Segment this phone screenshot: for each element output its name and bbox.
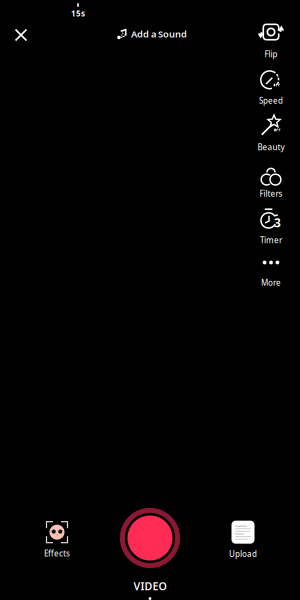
button[interactable]: Beauty xyxy=(248,114,294,152)
button[interactable]: Add a Sound xyxy=(109,22,195,46)
button[interactable]: Record xyxy=(119,507,181,569)
staticText: 15s xyxy=(71,8,85,19)
staticText: More xyxy=(261,277,281,288)
button[interactable]: Speed xyxy=(248,67,294,106)
staticText: Beauty xyxy=(257,142,284,152)
button[interactable]: Close xyxy=(4,18,38,52)
staticText: Flip xyxy=(264,49,277,59)
button[interactable]: More xyxy=(248,253,294,288)
button[interactable]: Flip xyxy=(248,21,294,59)
staticText: 3 xyxy=(274,214,281,230)
staticText: Speed xyxy=(259,95,283,106)
button[interactable]: Filters xyxy=(248,160,294,199)
button[interactable]: Upload xyxy=(216,521,270,559)
staticText: Upload xyxy=(229,549,257,559)
button[interactable]: Effects xyxy=(30,521,84,559)
button[interactable]: 3 xyxy=(248,207,294,245)
staticText: Add a Sound xyxy=(131,28,187,40)
staticText: Effects xyxy=(44,548,70,559)
staticText: VIDEO xyxy=(133,579,166,593)
staticText: Filters xyxy=(259,188,282,199)
staticText: Timer xyxy=(260,235,282,245)
